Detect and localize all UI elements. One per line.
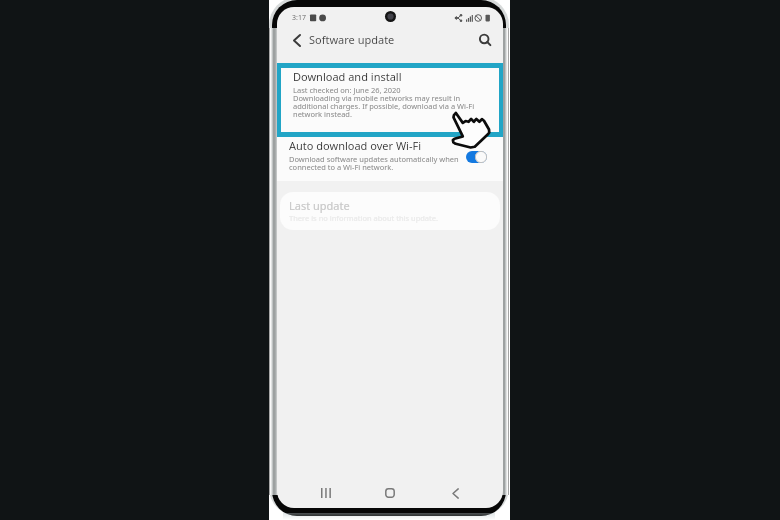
staticText: Last update (289, 198, 350, 213)
staticText: Last checked on: June 26, 2020 Downloadi… (293, 85, 475, 119)
button[interactable]: Auto download over Wi-Fi toggle, on (466, 151, 487, 163)
button[interactable]: Home (374, 478, 406, 508)
staticText: 3:17 (292, 13, 306, 23)
button[interactable]: Back (439, 478, 471, 508)
button[interactable]: Download and install (281, 68, 499, 132)
staticText: Download software updates automatically … (289, 154, 459, 172)
staticText: There is no information about this updat… (289, 213, 439, 223)
staticText: Software update (309, 32, 395, 47)
button[interactable]: Recent apps (310, 478, 342, 508)
button[interactable]: Last update (280, 192, 500, 230)
staticText: Auto download over Wi-Fi (289, 138, 422, 153)
staticText: Download and install (293, 69, 402, 84)
button[interactable]: Auto download over Wi-Fi (277, 137, 503, 181)
button[interactable]: Navigate up (284, 27, 310, 53)
button[interactable]: Search (472, 28, 498, 54)
